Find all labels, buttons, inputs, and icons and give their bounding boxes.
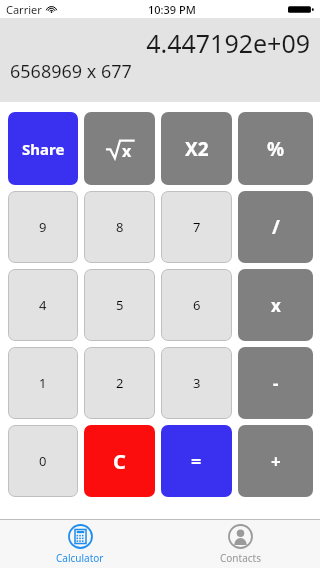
button[interactable]: x <box>238 269 313 341</box>
button[interactable]: - <box>238 347 313 419</box>
staticText: 3 <box>193 374 201 392</box>
staticText: 6568969 x 677 <box>10 59 132 84</box>
staticText: 10:39 PM <box>148 2 196 17</box>
button[interactable]: 5 <box>84 269 155 341</box>
staticText: / <box>272 214 280 240</box>
staticText: + <box>271 450 281 473</box>
staticText: 9 <box>39 218 47 236</box>
button[interactable]: Calculator <box>0 520 160 568</box>
staticText: Contacts <box>220 551 261 565</box>
other: Contacts <box>228 524 253 549</box>
staticText: x <box>122 140 132 162</box>
staticText: 2 <box>116 374 124 392</box>
staticText: Share <box>22 139 65 159</box>
staticText: 4.447192e+09 <box>146 26 310 60</box>
staticText: 1 <box>39 374 47 392</box>
staticText: - <box>273 372 279 395</box>
button[interactable]: C <box>84 425 155 497</box>
staticText: 8 <box>116 218 124 236</box>
staticText: 5 <box>116 296 124 314</box>
button[interactable]: Square root <box>84 112 155 185</box>
staticText: 6 <box>193 296 201 314</box>
button[interactable]: 6 <box>161 269 232 341</box>
staticText: = <box>191 449 202 474</box>
button[interactable]: + <box>238 425 313 497</box>
button[interactable]: 4 <box>8 269 78 341</box>
button[interactable]: 0 <box>8 425 78 497</box>
button[interactable]: 9 <box>8 191 78 263</box>
button[interactable]: 7 <box>161 191 232 263</box>
button[interactable]: % <box>238 112 313 185</box>
staticText: 0 <box>39 452 47 470</box>
staticText: Carrier <box>6 2 42 17</box>
button[interactable]: 1 <box>8 347 78 419</box>
staticText: X2 <box>185 136 209 162</box>
staticText: Calculator <box>56 551 104 565</box>
button[interactable]: 2 <box>84 347 155 419</box>
staticText: % <box>267 136 285 162</box>
button[interactable]: 8 <box>84 191 155 263</box>
other: Calculator <box>68 524 93 549</box>
button[interactable]: Share <box>8 112 78 185</box>
button[interactable]: / <box>238 191 313 263</box>
button[interactable]: X2 <box>161 112 232 185</box>
staticText: 7 <box>193 218 201 236</box>
button[interactable]: Contacts <box>160 520 320 568</box>
button[interactable]: = <box>161 425 232 497</box>
staticText: x <box>271 294 281 317</box>
staticText: 4 <box>39 296 47 314</box>
staticText: C <box>113 448 126 475</box>
button[interactable]: 3 <box>161 347 232 419</box>
